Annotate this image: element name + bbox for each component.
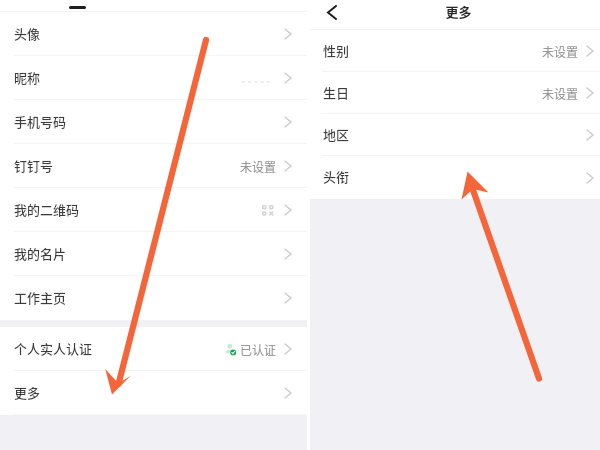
staticText: 钉钉号 xyxy=(14,156,54,175)
button[interactable]: 昵称 xyxy=(0,56,307,100)
button[interactable]: 我的名片 xyxy=(0,232,307,276)
staticText: 更多 xyxy=(445,2,472,21)
button[interactable]: 生日 xyxy=(310,72,600,114)
button[interactable]: 头像 xyxy=(0,12,307,56)
staticText: 手机号码 xyxy=(14,112,67,131)
button[interactable]: 地区 xyxy=(310,114,600,156)
staticText: 昵称 xyxy=(14,68,41,87)
staticText: 未设置 xyxy=(542,43,579,60)
staticText: 个人实人认证 xyxy=(14,339,93,358)
button[interactable]: 我的二维码 xyxy=(0,188,307,232)
button[interactable]: 个人实人认证 xyxy=(0,327,307,371)
staticText: 我的二维码 xyxy=(14,200,80,219)
button[interactable]: Back xyxy=(318,0,346,26)
button[interactable]: 更多 xyxy=(0,371,307,415)
staticText: 更多 xyxy=(14,383,41,402)
button[interactable]: 钉钉号 xyxy=(0,144,307,188)
staticText: 地区 xyxy=(323,125,350,144)
staticText: 未设置 xyxy=(542,85,579,102)
button[interactable]: 性别 xyxy=(310,30,600,72)
staticText: 头衔 xyxy=(323,167,350,186)
staticText: 已认证 xyxy=(240,341,277,358)
staticText: 工作主页 xyxy=(14,288,67,307)
staticText: 未设置 xyxy=(240,158,277,175)
staticText: 生日 xyxy=(323,83,350,102)
button[interactable]: 工作主页 xyxy=(0,276,307,320)
button[interactable]: 头衔 xyxy=(310,156,600,199)
staticText: 头像 xyxy=(14,24,41,43)
button[interactable]: 手机号码 xyxy=(0,100,307,144)
staticText: 性别 xyxy=(323,41,350,60)
staticText: 我的名片 xyxy=(14,244,67,263)
